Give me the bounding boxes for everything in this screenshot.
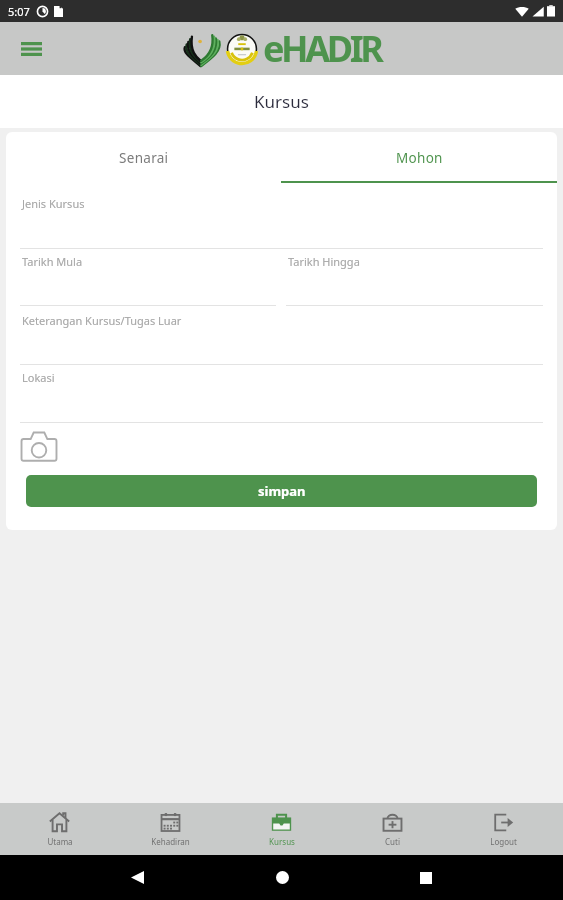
staticText: Mohon	[396, 149, 443, 167]
staticText: Lokasi	[22, 370, 55, 385]
button[interactable]: Utama	[4, 803, 115, 855]
button[interactable]: Cuti	[337, 803, 448, 855]
button[interactable]: Menu	[12, 30, 50, 68]
staticText: Jenis Kursus	[22, 196, 85, 211]
button[interactable]: Attach photo	[20, 431, 58, 462]
button[interactable]: Logout	[448, 803, 559, 855]
staticText: simpan	[258, 482, 306, 500]
button[interactable]: Kursus	[226, 803, 337, 855]
staticText: eHADIR	[263, 24, 381, 73]
button[interactable]: simpan	[26, 475, 537, 507]
button[interactable]: Mohon	[281, 132, 557, 183]
staticText: Kursus	[269, 836, 295, 847]
staticText: Cuti	[385, 836, 400, 847]
staticText: Keterangan Kursus/Tugas Luar	[22, 313, 182, 328]
button[interactable]: Kehadiran	[115, 803, 226, 855]
button[interactable]: Senarai	[6, 132, 281, 183]
staticText: Kursus	[254, 90, 309, 113]
staticText: Tarikh Hingga	[288, 254, 360, 269]
staticText: Logout	[490, 836, 517, 847]
staticText: Kehadiran	[151, 836, 190, 847]
staticText: Utama	[47, 836, 73, 847]
staticText: 5:07	[8, 4, 30, 19]
staticText: Senarai	[119, 149, 169, 167]
staticText: Tarikh Mula	[22, 254, 83, 269]
